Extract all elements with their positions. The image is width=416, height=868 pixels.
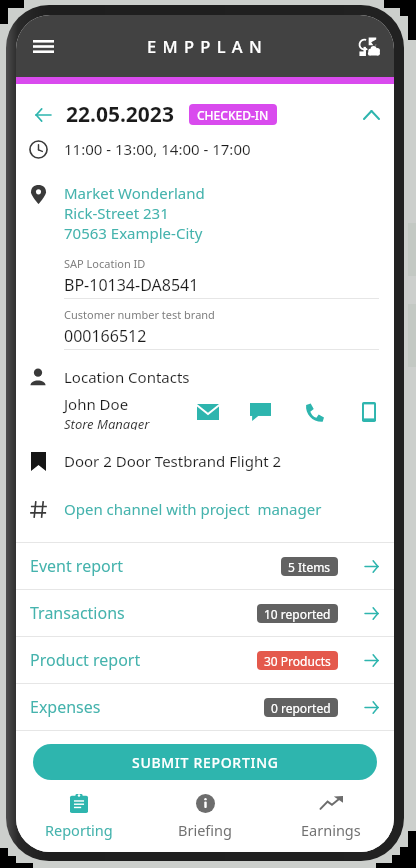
staticText: Expenses bbox=[30, 696, 101, 718]
staticText: BP-10134-DA8541 bbox=[64, 274, 199, 294]
button[interactable]: Sync bbox=[348, 25, 390, 67]
button[interactable]: Reporting bbox=[16, 780, 142, 852]
staticText: Customer number test brand bbox=[64, 307, 215, 321]
button[interactable]: Expenses bbox=[16, 684, 394, 730]
staticText: 22.05.2023 bbox=[66, 100, 174, 129]
button[interactable]: Transactions bbox=[16, 590, 394, 636]
staticText: 10 reported bbox=[264, 606, 331, 622]
staticText: Product report bbox=[30, 649, 141, 671]
staticText: SAP Location ID bbox=[64, 256, 146, 270]
button[interactable]: Email bbox=[194, 398, 222, 426]
button[interactable]: Chat bbox=[246, 398, 274, 426]
staticText: Market Wonderland bbox=[64, 183, 205, 203]
button[interactable]: Call bbox=[300, 398, 328, 426]
button[interactable]: Earnings bbox=[268, 780, 394, 852]
staticText: 11:00 - 13:00, 14:00 - 17:00 bbox=[64, 139, 251, 159]
button[interactable]: Back bbox=[28, 100, 58, 130]
staticText: 0 reported bbox=[271, 700, 331, 716]
button[interactable]: SUBMIT REPORTING bbox=[33, 744, 377, 780]
staticText: Earnings bbox=[301, 820, 361, 840]
staticText: Reporting bbox=[45, 820, 113, 840]
staticText: Transactions bbox=[30, 602, 125, 624]
staticText: EMPPLAN bbox=[147, 35, 268, 57]
staticText: 5 Items bbox=[288, 559, 331, 575]
button[interactable]: Collapse bbox=[356, 100, 386, 130]
button[interactable]: Product report bbox=[16, 637, 394, 683]
staticText: 000166512 bbox=[64, 325, 147, 345]
button[interactable]: Mobile bbox=[355, 398, 383, 426]
staticText: Open channel with project manager bbox=[64, 499, 322, 519]
staticText: Door 2 Door Testbrand Flight 2 bbox=[64, 451, 282, 471]
staticText: 70563 Example-City bbox=[64, 223, 203, 243]
button[interactable]: Briefing bbox=[142, 780, 268, 852]
staticText: John Doe bbox=[64, 394, 129, 414]
button[interactable]: Menu bbox=[22, 25, 64, 67]
staticText: SUBMIT REPORTING bbox=[132, 753, 279, 772]
staticText: 30 Products bbox=[264, 653, 331, 669]
staticText: Rick-Street 231 bbox=[64, 203, 169, 223]
button[interactable]: Open channel with project manager bbox=[16, 498, 394, 520]
staticText: Location Contacts bbox=[64, 367, 190, 387]
staticText: Briefing bbox=[178, 820, 232, 840]
staticText: Store Manager bbox=[64, 415, 150, 430]
button[interactable]: Event report bbox=[16, 543, 394, 589]
staticText: Event report bbox=[30, 555, 124, 577]
staticText: CHECKED-IN bbox=[197, 107, 269, 123]
